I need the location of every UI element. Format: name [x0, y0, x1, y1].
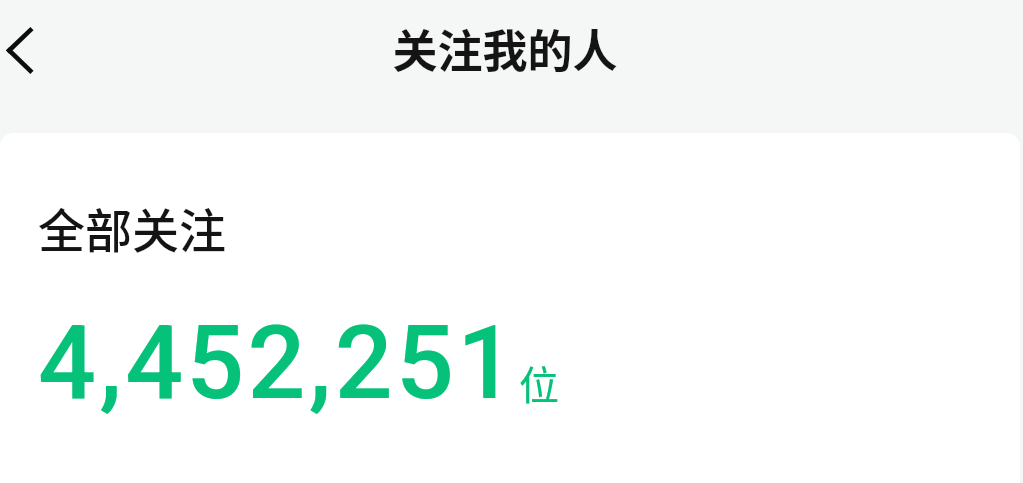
button[interactable]: 全部关注 [0, 133, 1020, 321]
staticText: 位 [519, 354, 559, 412]
staticText: 全部关注 [38, 193, 226, 261]
button[interactable]: Back [0, 0, 76, 100]
staticText: 4,452,251 [38, 303, 519, 423]
staticText: 关注我的人 [392, 16, 618, 81]
